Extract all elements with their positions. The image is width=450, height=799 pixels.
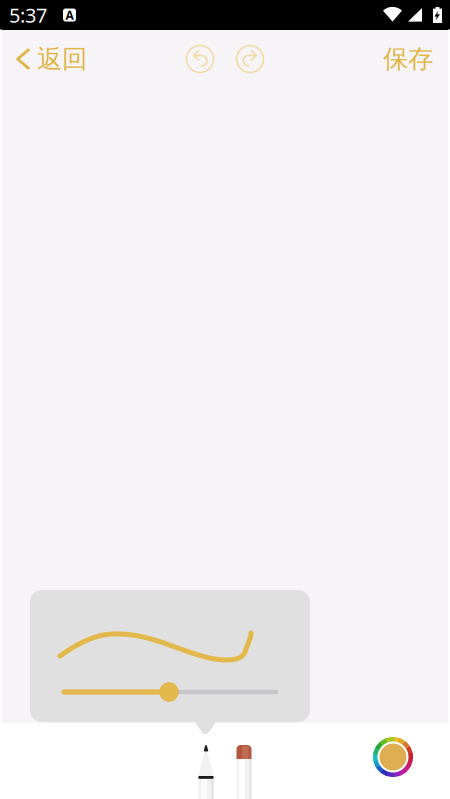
button[interactable]: Color — [373, 737, 413, 777]
staticText: 5:37 — [9, 2, 47, 28]
staticText: A — [65, 7, 73, 23]
button[interactable]: 返回 — [0, 30, 99, 88]
button[interactable]: Undo — [178, 37, 222, 81]
button[interactable]: Redo — [228, 37, 272, 81]
button[interactable]: Pen — [196, 745, 216, 799]
staticText: 返回 — [37, 43, 87, 74]
button[interactable]: 保存 — [366, 30, 450, 88]
staticText: 保存 — [383, 43, 433, 74]
button[interactable]: Marker — [234, 745, 254, 799]
